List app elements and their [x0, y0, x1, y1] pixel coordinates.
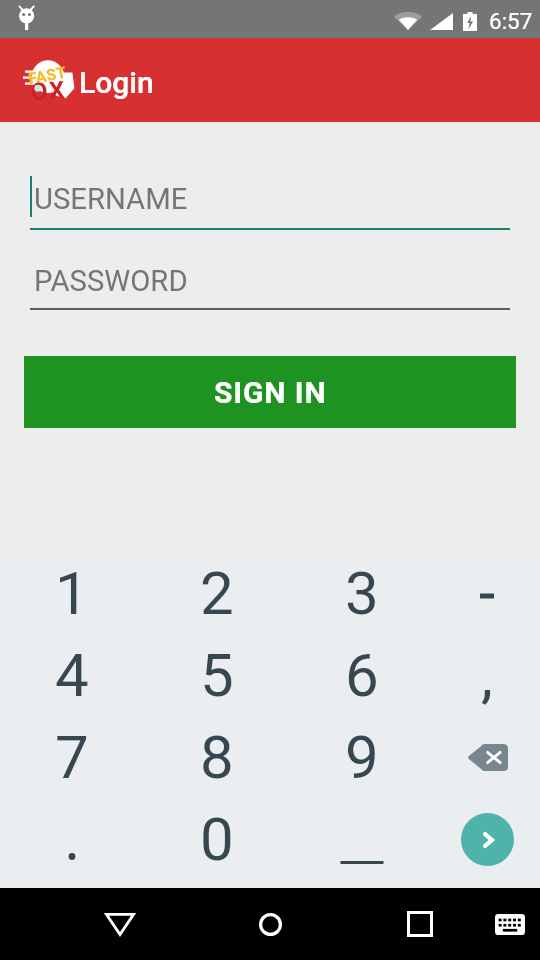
staticText: 8	[200, 722, 234, 792]
staticText: USERNAME	[34, 182, 188, 216]
button[interactable]: ,	[434, 634, 540, 716]
button[interactable]: PASSWORD	[30, 258, 510, 310]
staticText: 7	[55, 722, 89, 792]
other: Period	[49, 808, 95, 871]
other: Minus	[472, 572, 502, 614]
button[interactable]: Home	[240, 894, 300, 954]
button[interactable]: Next	[461, 813, 514, 866]
staticText: Login	[79, 65, 154, 100]
staticText: 6	[345, 640, 379, 710]
staticText: 2	[200, 558, 234, 628]
button[interactable]: 1	[0, 552, 144, 634]
staticText: FAST	[27, 62, 68, 87]
other: Backspace	[467, 744, 508, 771]
staticText: SIGN IN	[214, 375, 327, 410]
button[interactable]: Hide keyboard	[90, 894, 150, 954]
button[interactable]: 8	[144, 716, 289, 798]
button[interactable]: 2	[144, 552, 289, 634]
button[interactable]: 9	[289, 716, 434, 798]
other: Underscore	[339, 808, 385, 871]
staticText: OX	[30, 76, 68, 106]
staticText: 1	[55, 558, 89, 628]
staticText: 5	[200, 640, 234, 710]
button[interactable]: Underscore	[289, 798, 434, 880]
button[interactable]: Next	[434, 798, 540, 880]
button[interactable]: 6	[289, 634, 434, 716]
staticText: 6:57	[489, 8, 533, 34]
button[interactable]: Change keyboard	[480, 894, 540, 954]
staticText: PASSWORD	[34, 264, 188, 298]
staticText: 0	[200, 804, 234, 874]
button[interactable]: 0	[144, 798, 289, 880]
button[interactable]: Backspace	[434, 716, 540, 798]
staticText: ,	[481, 640, 493, 710]
staticText: 9	[345, 722, 379, 792]
button[interactable]: Recent apps	[390, 894, 450, 954]
button[interactable]: 3	[289, 552, 434, 634]
staticText: 4	[55, 640, 89, 710]
button[interactable]: USERNAME	[30, 178, 510, 230]
button[interactable]: 5	[144, 634, 289, 716]
button[interactable]: 4	[0, 634, 144, 716]
button[interactable]: SIGN IN	[24, 356, 516, 428]
other: FastOx logo	[24, 56, 76, 102]
staticText: 3	[345, 558, 379, 628]
button[interactable]: Minus	[434, 552, 540, 634]
button[interactable]: 7	[0, 716, 144, 798]
button[interactable]: Period	[0, 798, 144, 880]
